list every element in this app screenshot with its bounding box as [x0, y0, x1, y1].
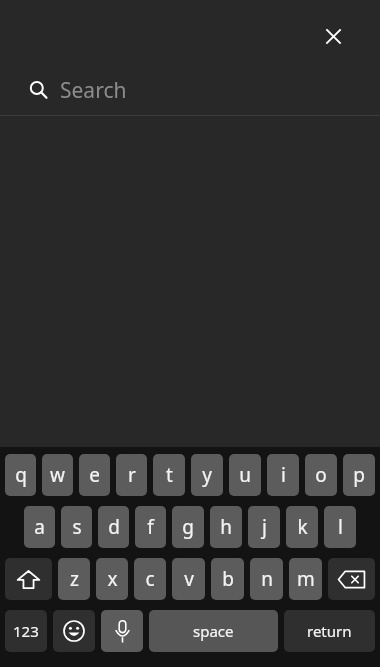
button[interactable]: return	[284, 610, 375, 652]
staticText: y	[202, 462, 212, 488]
button[interactable]: q	[5, 454, 36, 496]
staticText: b	[222, 566, 234, 592]
staticText: w	[50, 462, 65, 488]
staticText: h	[220, 514, 232, 540]
staticText: m	[297, 566, 315, 592]
button[interactable]: a	[24, 506, 55, 548]
staticText: s	[72, 514, 82, 540]
staticText: z	[70, 566, 79, 592]
staticText: i	[281, 462, 286, 488]
staticText: e	[89, 462, 100, 488]
staticText: t	[166, 462, 173, 488]
button[interactable]: z	[58, 558, 90, 600]
button[interactable]: r	[116, 454, 147, 496]
button[interactable]: v	[172, 558, 205, 600]
staticText: j	[262, 514, 267, 540]
staticText: c	[145, 566, 155, 592]
button[interactable]: Voice input	[101, 610, 143, 652]
staticText: u	[239, 462, 251, 488]
button[interactable]: n	[250, 558, 283, 600]
staticText: g	[182, 514, 194, 540]
staticText: space	[193, 621, 234, 641]
button[interactable]: c	[134, 558, 166, 600]
staticText: v	[184, 566, 194, 592]
button[interactable]: l	[324, 506, 356, 548]
staticText: r	[128, 462, 136, 488]
button[interactable]: s	[61, 506, 92, 548]
button[interactable]: Backspace	[328, 558, 375, 600]
button[interactable]: g	[172, 506, 204, 548]
staticText: d	[108, 514, 120, 540]
button[interactable]: Emoji	[53, 610, 95, 652]
button[interactable]: t	[153, 454, 185, 496]
button[interactable]: d	[98, 506, 129, 548]
staticText: q	[15, 462, 27, 488]
button[interactable]: Close	[317, 20, 349, 52]
button[interactable]: p	[343, 454, 375, 496]
button[interactable]: w	[42, 454, 73, 496]
button[interactable]: u	[229, 454, 261, 496]
button[interactable]: space	[149, 610, 278, 652]
staticText: f	[147, 514, 154, 540]
button[interactable]: x	[96, 558, 128, 600]
button[interactable]: b	[211, 558, 244, 600]
button[interactable]: i	[267, 454, 299, 496]
staticText: Search	[60, 76, 127, 105]
button[interactable]: e	[79, 454, 110, 496]
staticText: p	[353, 462, 365, 488]
button[interactable]: k	[286, 506, 318, 548]
button[interactable]: m	[289, 558, 322, 600]
staticText: n	[261, 566, 273, 592]
button[interactable]: o	[305, 454, 337, 496]
button[interactable]: Search	[0, 64, 380, 116]
staticText: k	[297, 514, 308, 540]
staticText: a	[34, 514, 45, 540]
staticText: o	[315, 462, 327, 488]
staticText: return	[307, 621, 352, 641]
button[interactable]: 123	[5, 610, 47, 652]
staticText: l	[338, 514, 343, 540]
button[interactable]: Shift	[5, 558, 52, 600]
staticText: x	[107, 566, 118, 592]
button[interactable]: h	[210, 506, 242, 548]
staticText: 123	[13, 621, 39, 641]
button[interactable]: y	[191, 454, 223, 496]
button[interactable]: j	[248, 506, 280, 548]
button[interactable]: f	[135, 506, 166, 548]
